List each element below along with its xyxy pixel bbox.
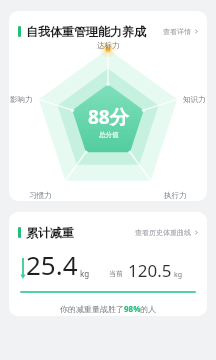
other: Weight decreased	[20, 258, 26, 279]
button[interactable]: 累计减重	[9, 212, 207, 316]
staticText: 88分	[88, 104, 129, 130]
staticText: 查看详情	[163, 27, 191, 36]
staticText: 自我体重管理能力养成	[26, 24, 146, 39]
staticText: kg	[80, 268, 90, 279]
staticText: 累计减重	[26, 225, 74, 240]
staticText: kg	[174, 270, 183, 280]
staticText: 查看历史体重曲线	[135, 228, 191, 237]
staticText: 总分值	[99, 131, 119, 139]
staticText: 执行力	[164, 191, 187, 200]
staticText: 影响力	[10, 95, 33, 104]
staticText: 25.4	[26, 247, 78, 282]
staticText: 知识力	[183, 95, 206, 104]
staticText: 当前	[109, 269, 123, 278]
button[interactable]: 查看详情	[163, 24, 199, 39]
staticText: 120.5	[128, 259, 172, 282]
button[interactable]: 查看历史体重曲线	[135, 225, 199, 240]
staticText: 你的减重量战胜了98%的人	[60, 303, 157, 314]
button[interactable]: 自我体重管理能力养成	[9, 11, 207, 201]
staticText: 达标力	[97, 41, 120, 50]
staticText: 习惯力	[29, 191, 52, 200]
